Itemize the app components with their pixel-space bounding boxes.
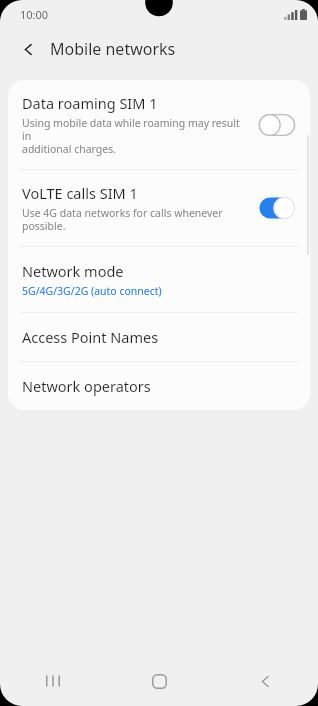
- staticText: Mobile networks: [50, 38, 176, 60]
- staticText: Access Point Names: [22, 327, 159, 347]
- staticText: VoLTE calls SIM 1: [22, 183, 138, 203]
- button[interactable]: Recent apps: [0, 656, 106, 706]
- staticText: 10:00: [20, 7, 49, 22]
- button[interactable]: Back: [212, 656, 318, 706]
- staticText: Network operators: [22, 376, 151, 396]
- staticText: Use 4G data networks for calls whenever …: [22, 206, 223, 233]
- button[interactable]: Data roaming SIM 1: [8, 80, 310, 169]
- button[interactable]: Network operators: [8, 362, 310, 410]
- button[interactable]: VoLTE calls SIM 1: [8, 170, 310, 246]
- button[interactable]: Toggle on: [256, 195, 298, 221]
- button[interactable]: Back: [14, 35, 42, 63]
- staticText: Data roaming SIM 1: [22, 93, 158, 113]
- button[interactable]: Toggle off: [256, 112, 298, 138]
- staticText: Using mobile data while roaming may resu…: [22, 116, 248, 156]
- button[interactable]: Access Point Names: [8, 313, 310, 361]
- button[interactable]: Network mode: [8, 247, 310, 312]
- staticText: Network mode: [22, 261, 124, 281]
- staticText: 5G/4G/3G/2G (auto connect): [22, 284, 162, 298]
- button[interactable]: Home: [106, 656, 212, 706]
